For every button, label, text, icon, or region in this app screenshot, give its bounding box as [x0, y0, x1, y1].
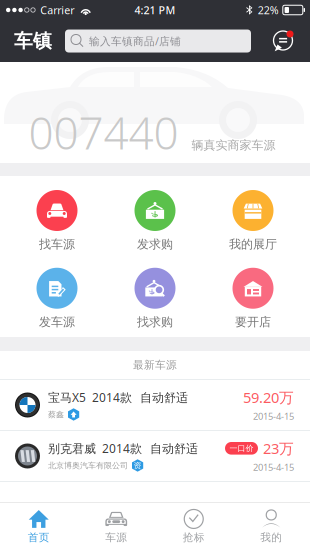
staticText: 59.20万	[243, 388, 294, 407]
button[interactable]: 宝马X5 2014款 自动舒适	[0, 380, 310, 430]
staticText: 车源	[105, 531, 127, 544]
button[interactable]: 要开店	[204, 268, 302, 329]
staticText: 首页	[28, 531, 50, 544]
button[interactable]: 抢标	[155, 502, 232, 550]
staticText: 别克君威 2014款 自动舒适	[48, 440, 198, 456]
staticText: 22%	[258, 3, 279, 17]
button[interactable]: 车镇	[14, 29, 52, 52]
staticText: 抢标	[183, 531, 205, 544]
staticText: 2015-4-15	[253, 461, 294, 473]
staticText: 输入车镇商品/店铺	[89, 34, 181, 48]
staticText: Carrier	[40, 3, 74, 17]
button[interactable]: 找求购	[106, 268, 204, 329]
staticText: 辆真实商家车源	[191, 138, 275, 153]
staticText: 蔡鑫	[48, 410, 64, 419]
button[interactable]: 首页	[0, 502, 77, 550]
button[interactable]: 我的	[232, 502, 310, 550]
button[interactable]: 车源	[77, 502, 155, 550]
staticText: 车镇	[14, 29, 52, 52]
staticText: 4:21 PM	[134, 3, 175, 17]
staticText: 北京博奥汽车有限公司	[48, 461, 128, 470]
staticText: 23万	[263, 439, 294, 458]
staticText: 一口价	[229, 443, 253, 453]
staticText: 发求购	[137, 237, 173, 252]
button[interactable]: 发车源	[8, 268, 106, 329]
staticText: 宝马X5 2014款 自动舒适	[48, 389, 188, 405]
button[interactable]: 发求购	[106, 190, 204, 252]
staticText: 要开店	[235, 315, 271, 329]
button[interactable]: 输入车镇商品/店铺	[65, 29, 251, 52]
button[interactable]: 我的展厅	[204, 190, 302, 252]
button[interactable]: 别克君威 2014款 自动舒适	[0, 431, 310, 481]
staticText: 找车源	[39, 237, 75, 252]
staticText: 最新车源	[133, 358, 177, 371]
staticText: 我的展厅	[229, 237, 277, 252]
button[interactable]: 找车源	[8, 190, 106, 252]
staticText: 发车源	[39, 315, 75, 329]
staticText: 找求购	[137, 315, 173, 329]
staticText: 我的	[260, 531, 282, 544]
staticText: 2015-4-15	[253, 410, 294, 422]
button[interactable]: Messages	[272, 30, 294, 51]
staticText: 资	[134, 461, 142, 470]
staticText: 007440	[28, 103, 178, 162]
